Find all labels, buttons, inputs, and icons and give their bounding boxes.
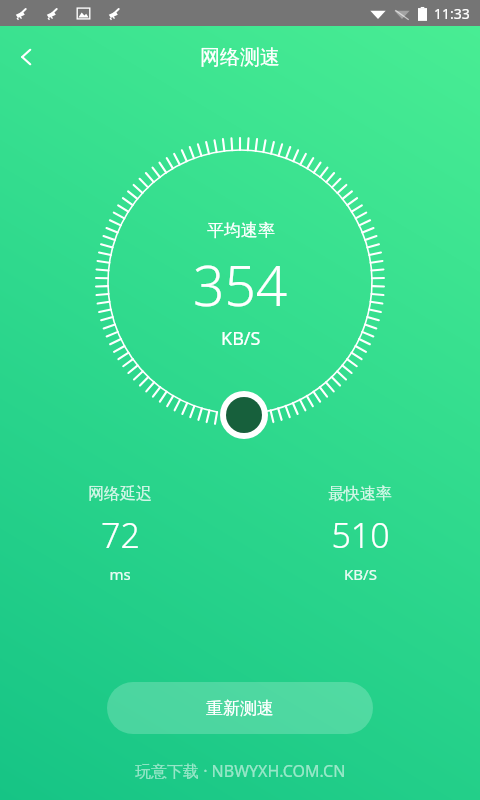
staticText: 重新测速 (206, 698, 274, 719)
staticText: 11:33 (434, 4, 470, 23)
staticText: 72 (101, 512, 140, 558)
staticText: 354 (193, 247, 288, 322)
staticText: 最快速率 (328, 484, 392, 504)
staticText: 玩意下载 · NBWYXH.COM.CN (135, 760, 346, 782)
staticText: KB/S (344, 564, 377, 584)
button[interactable]: Back (0, 30, 54, 84)
button[interactable]: 重新测速 (107, 682, 373, 734)
staticText: 510 (331, 512, 390, 558)
staticText: 网络延迟 (88, 484, 152, 504)
staticText: 网络测速 (200, 45, 280, 70)
staticText: KB/S (221, 326, 261, 351)
staticText: 平均速率 (207, 220, 275, 241)
staticText: ms (109, 564, 131, 584)
